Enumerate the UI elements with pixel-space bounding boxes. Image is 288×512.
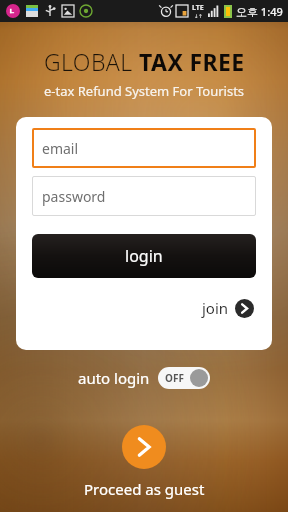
staticText: login xyxy=(125,245,163,267)
button[interactable]: join xyxy=(200,296,256,320)
staticText: TAX FREE xyxy=(139,46,245,77)
button[interactable]: Auto login toggle, off xyxy=(158,367,210,389)
staticText: ↓↑ xyxy=(194,13,203,19)
staticText: e-tax Refund System For Tourists xyxy=(0,82,288,100)
staticText: GLOBAL xyxy=(44,46,139,77)
staticText: auto login xyxy=(78,368,150,388)
button[interactable]: Proceed as guest xyxy=(0,425,288,499)
staticText: Proceed as guest xyxy=(84,479,205,499)
staticText: 오후 1:49 xyxy=(236,4,283,19)
button[interactable]: email xyxy=(32,128,256,168)
staticText: LTE xyxy=(192,3,204,13)
staticText: email xyxy=(42,139,79,158)
staticText: OFF xyxy=(165,371,184,385)
button[interactable]: login xyxy=(32,234,256,278)
staticText: join xyxy=(202,298,229,318)
button[interactable]: password xyxy=(32,176,256,216)
staticText: password xyxy=(42,187,106,206)
